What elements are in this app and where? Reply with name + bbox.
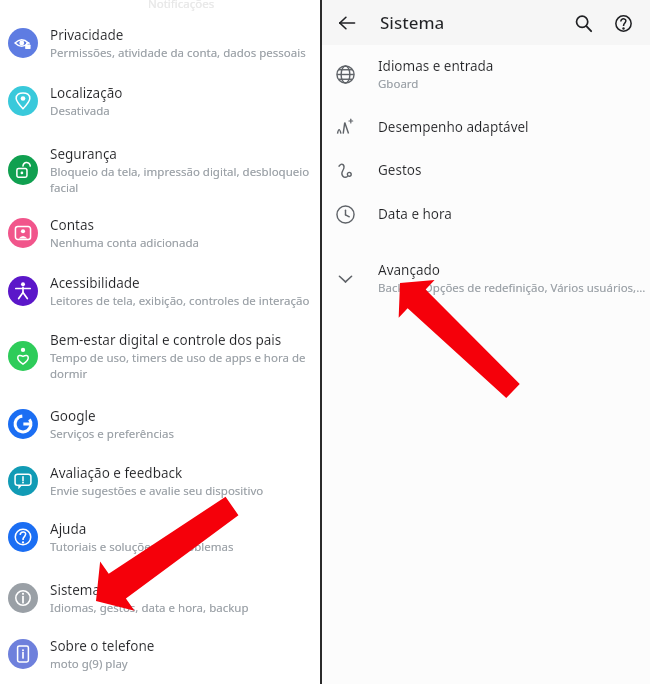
staticText: Bloqueio da tela, impressão digital, des… xyxy=(50,164,312,196)
staticText: Tempo de uso, timers de uso de apps e ho… xyxy=(50,350,312,382)
staticText: Backup, Opções de redefinição, Vários us… xyxy=(378,280,646,296)
staticText: Contas xyxy=(50,216,94,234)
staticText: Ajuda xyxy=(50,520,87,538)
button[interactable]: Avançado xyxy=(322,254,650,302)
staticText: Sistema xyxy=(380,11,445,34)
staticText: Permissões, atividade da conta, dados pe… xyxy=(50,45,306,61)
staticText: Avançado xyxy=(378,261,440,279)
button[interactable]: Ajuda xyxy=(606,6,640,40)
staticText: Leitores de tela, exibição, controles de… xyxy=(50,293,310,309)
button[interactable]: Idiomas e entrada xyxy=(322,50,650,98)
staticText: Desempenho adaptável xyxy=(378,118,529,136)
button[interactable]: Sistema xyxy=(0,570,320,626)
button[interactable]: Acessibilidade xyxy=(0,263,320,319)
staticText: Sobre o telefone xyxy=(50,637,155,655)
button[interactable]: Avaliação e feedback xyxy=(0,453,320,509)
staticText: Data e hora xyxy=(378,205,452,223)
staticText: Idiomas, gestos, data e hora, backup xyxy=(50,600,249,616)
staticText: Gestos xyxy=(378,161,422,179)
button[interactable]: Gestos xyxy=(322,146,650,194)
button[interactable]: Desempenho adaptável xyxy=(322,103,650,151)
button[interactable]: Sobre o telefone xyxy=(0,626,320,682)
staticText: Localização xyxy=(50,84,123,102)
staticText: Avaliação e feedback xyxy=(50,464,183,482)
button[interactable]: Voltar xyxy=(330,6,364,40)
staticText: Notificações xyxy=(148,0,215,12)
staticText: Bem-estar digital e controle dos pais xyxy=(50,331,282,349)
button[interactable]: Segurança xyxy=(0,142,320,198)
button[interactable]: Bem-estar digital e controle dos pais xyxy=(0,328,320,384)
staticText: Tutoriais e soluções de problemas xyxy=(50,539,234,555)
button[interactable]: Data e hora xyxy=(322,190,650,238)
staticText: Gboard xyxy=(378,76,419,92)
staticText: Envie sugestões e avalie seu dispositivo xyxy=(50,483,264,499)
button[interactable]: Ajuda xyxy=(0,509,320,565)
staticText: Nenhuma conta adicionada xyxy=(50,235,199,251)
staticText: Serviços e preferências xyxy=(50,426,174,442)
staticText: Sistema xyxy=(50,581,101,599)
button[interactable]: Google xyxy=(0,396,320,452)
staticText: Desativada xyxy=(50,103,110,119)
staticText: Segurança xyxy=(50,145,117,163)
staticText: Idiomas e entrada xyxy=(378,57,494,75)
button[interactable]: Localização xyxy=(0,73,320,129)
button[interactable]: Pesquisar xyxy=(566,6,600,40)
button[interactable]: Privacidade xyxy=(0,15,320,71)
staticText: Acessibilidade xyxy=(50,274,140,292)
staticText: Privacidade xyxy=(50,26,124,44)
staticText: moto g(9) play xyxy=(50,656,128,672)
staticText: Google xyxy=(50,407,96,425)
button[interactable]: Contas xyxy=(0,205,320,261)
